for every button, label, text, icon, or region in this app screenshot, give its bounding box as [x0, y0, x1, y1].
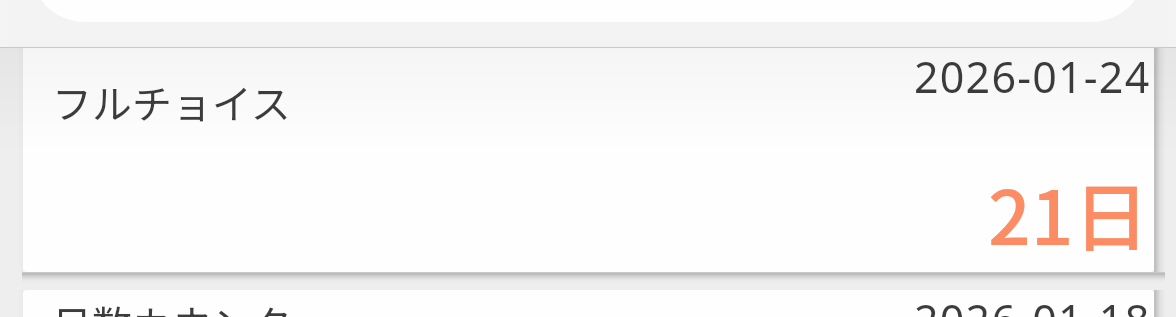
button[interactable]: 2026-01-18 [23, 290, 1154, 317]
staticText: 日数カウンタ [52, 294, 292, 317]
staticText: フルチョイス [52, 73, 291, 131]
staticText: 2026-01-24 [914, 47, 1151, 106]
staticText: 21日 [988, 158, 1149, 267]
button[interactable]: 2026-01-24 [23, 42, 1154, 272]
staticText: 2026-01-18 [914, 290, 1151, 317]
